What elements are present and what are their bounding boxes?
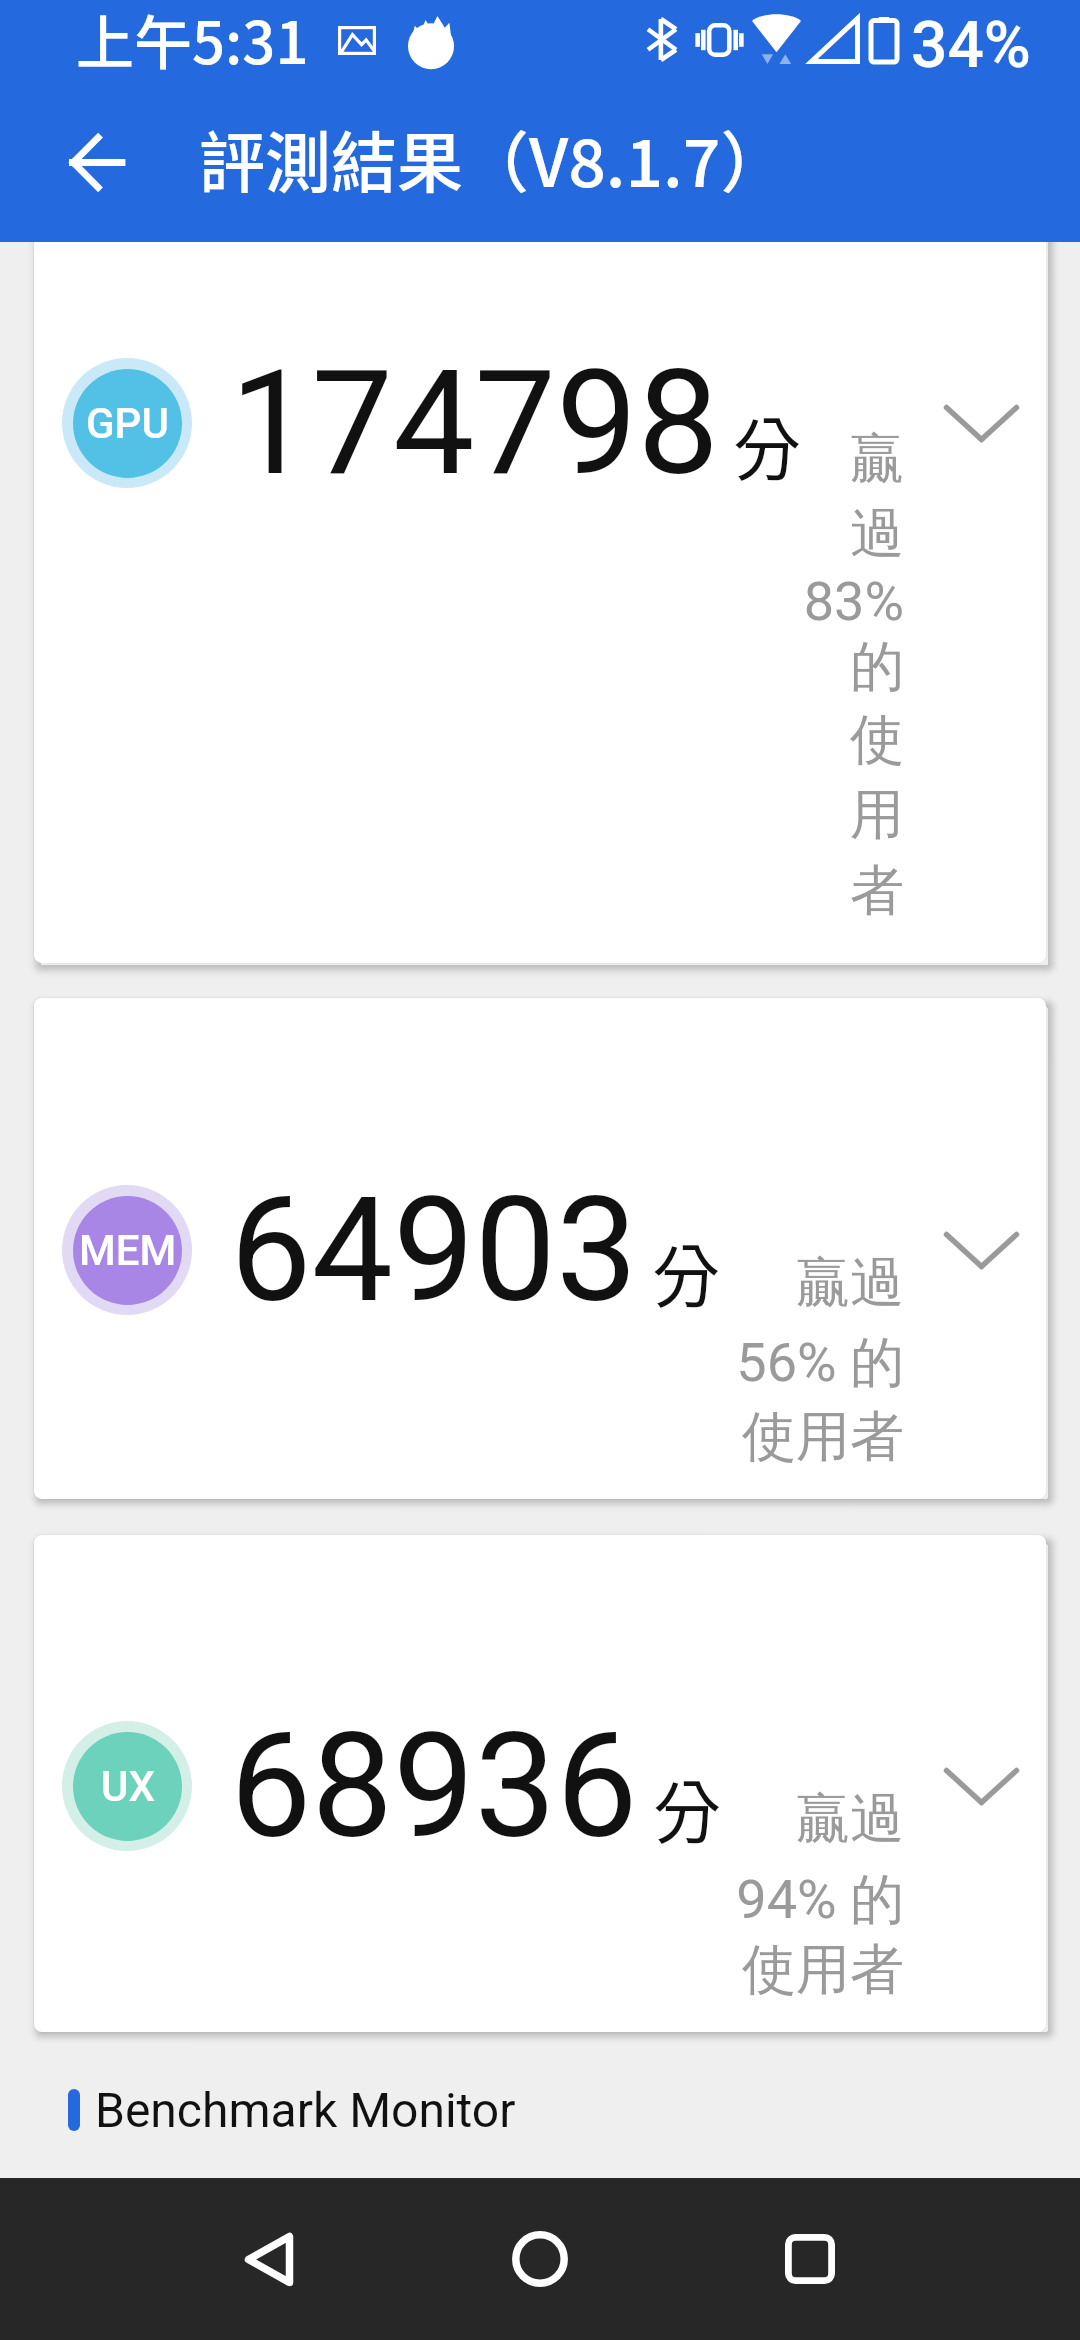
staticText: 56% 的 (584, 1329, 904, 1397)
button[interactable]: Back (200, 2180, 340, 2338)
staticText: Benchmark Monitor (95, 2082, 516, 2138)
staticText: 評測結果（V8.1.7） (199, 110, 787, 206)
staticText: 分 (653, 1759, 722, 1857)
staticText: 使 (584, 706, 904, 774)
staticText: 過 (584, 500, 904, 568)
staticText: 者 (584, 857, 904, 925)
staticText: MEM (79, 1226, 177, 1275)
staticText: 174798 (230, 338, 719, 508)
staticText: 使用者 (584, 1403, 904, 1471)
button[interactable]: Back (32, 92, 158, 232)
button[interactable]: Expand details (926, 368, 1036, 478)
button[interactable]: Recent apps (740, 2180, 880, 2338)
staticText: UX (101, 1762, 155, 1811)
staticText: 贏過 (584, 1249, 904, 1317)
button[interactable]: Benchmark Monitor (68, 2080, 516, 2140)
staticText: 68936 (230, 1701, 638, 1871)
staticText: GPU (86, 399, 169, 448)
button[interactable]: Expand details (926, 1195, 1036, 1305)
button[interactable] (34, 1535, 1046, 2032)
staticText: 的 (584, 633, 904, 701)
staticText: 分 (733, 396, 802, 494)
staticText: 贏 (584, 425, 904, 493)
staticText: 分 (652, 1223, 721, 1321)
button[interactable]: Home (470, 2180, 610, 2338)
staticText: 34% (911, 8, 1031, 83)
staticText: 使用者 (584, 1936, 904, 2004)
staticText: 贏過 (584, 1785, 904, 1853)
button[interactable] (34, 180, 1046, 963)
staticText: 83% (584, 570, 904, 633)
button[interactable] (34, 998, 1046, 1499)
staticText: 94% 的 (584, 1866, 904, 1934)
button[interactable]: Expand details (926, 1731, 1036, 1841)
staticText: 上午5:31 (76, 0, 309, 81)
staticText: 用 (584, 781, 904, 849)
staticText: 64903 (230, 1165, 638, 1335)
